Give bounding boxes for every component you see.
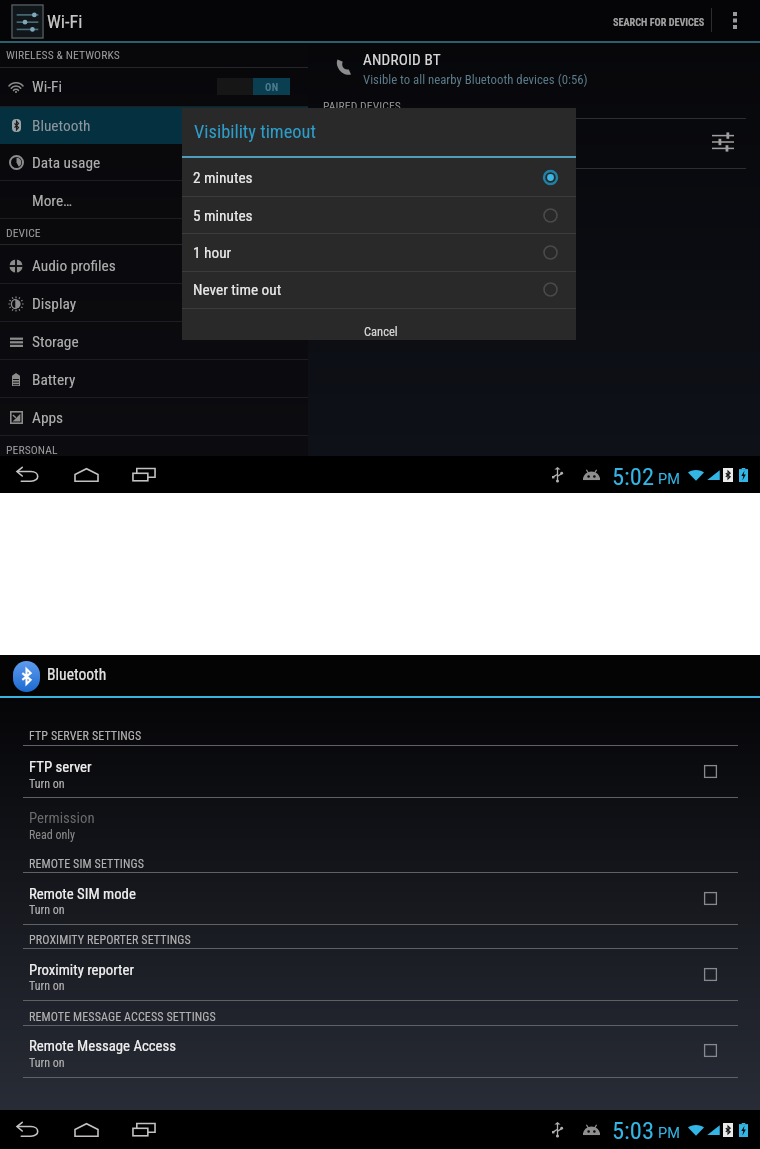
button[interactable]: Recents [128,456,160,493]
staticText: 2 minutes [193,169,253,187]
button[interactable]: Wi-Fi switch on [217,78,290,95]
button[interactable]: Data usage [0,144,308,181]
staticText: Apps [32,409,64,427]
staticText: FTP server [29,758,92,775]
button[interactable]: Remote SIM mode checkbox [692,883,728,913]
button[interactable]: Proximity reporter checkbox [692,959,728,989]
staticText: 5:03 [612,1116,655,1145]
staticText: WIRELESS & NETWORKS [6,48,120,62]
staticText: PM [658,1125,680,1142]
staticText: Wi-Fi [47,11,83,32]
button[interactable]: 2 minutes [182,159,576,196]
button[interactable]: Permission [0,804,760,846]
staticText: Read only [29,828,76,842]
staticText: Remote Message Access [29,1037,177,1054]
button[interactable]: Recents [128,1110,160,1149]
staticText: Turn on [29,777,65,791]
button[interactable]: Storage [0,323,308,360]
button[interactable]: Bluetooth [0,107,308,144]
staticText: Turn on [29,903,65,917]
staticText: Visible to all nearby Bluetooth devices … [363,72,588,87]
staticText: Display [32,295,77,313]
button[interactable]: FTP server checkbox [692,756,728,786]
button[interactable]: Battery [0,361,308,398]
staticText: 5 minutes [193,207,253,225]
button[interactable]: Back [12,456,44,493]
button[interactable]: SEARCH FOR DEVICES [610,2,708,42]
staticText: Turn on [29,979,65,993]
staticText: Never time out [193,281,282,299]
staticText: PM [658,471,680,488]
staticText: Storage [32,333,79,351]
button[interactable]: Apps [0,399,308,436]
staticText: 1 hour [193,244,232,262]
staticText: DEVICE [6,226,41,240]
button[interactable]: Display [0,285,308,322]
staticText: Bluetooth [47,666,107,684]
button[interactable]: 5 minutes [182,197,576,234]
button[interactable]: Remote SIM mode [0,880,760,922]
button[interactable]: FTP server [0,753,760,795]
button[interactable]: Device settings [308,118,760,168]
staticText: PROXIMITY REPORTER SETTINGS [29,933,191,947]
staticText: Visibility timeout [194,121,316,143]
staticText: Turn on [29,1056,65,1070]
button[interactable]: Home [70,1110,102,1149]
staticText: Battery [32,371,76,389]
staticText: SEARCH FOR DEVICES [613,16,705,28]
button[interactable]: Back [12,1110,44,1149]
staticText: ON [265,81,279,93]
staticText: REMOTE MESSAGE ACCESS SETTINGS [29,1010,216,1024]
button[interactable]: Audio profiles [0,247,308,284]
button[interactable]: Cancel [182,309,576,340]
staticText: More… [32,192,73,210]
button[interactable]: Bluetooth [13,661,40,692]
button[interactable]: Remote Message Access [0,1032,760,1074]
button[interactable]: Proximity reporter [0,956,760,998]
staticText: PERSONAL [6,443,58,457]
staticText: Permission [29,809,95,826]
staticText: ANDROID BT [363,51,441,69]
button[interactable]: Remote Message Access checkbox [692,1035,728,1065]
button[interactable]: Home [70,456,102,493]
staticText: Audio profiles [32,257,116,275]
staticText: Wi-Fi [32,78,63,96]
staticText: PAIRED DEVICES [323,99,401,113]
staticText: Proximity reporter [29,961,134,978]
staticText: Cancel [364,324,398,339]
staticText: Bluetooth [32,117,91,135]
button[interactable]: Settings [12,5,43,38]
staticText: Data usage [32,154,101,172]
staticText: REMOTE SIM SETTINGS [29,857,144,871]
button[interactable]: More options [722,4,748,36]
staticText: FTP SERVER SETTINGS [29,729,142,743]
button[interactable]: Device settings [706,125,740,159]
staticText: Remote SIM mode [29,885,136,902]
button[interactable]: Wi-Fi [0,67,308,107]
button[interactable]: More… [0,182,308,219]
button[interactable]: 1 hour [182,234,576,271]
staticText: 5:02 [612,462,655,491]
button[interactable]: Never time out [182,271,576,308]
